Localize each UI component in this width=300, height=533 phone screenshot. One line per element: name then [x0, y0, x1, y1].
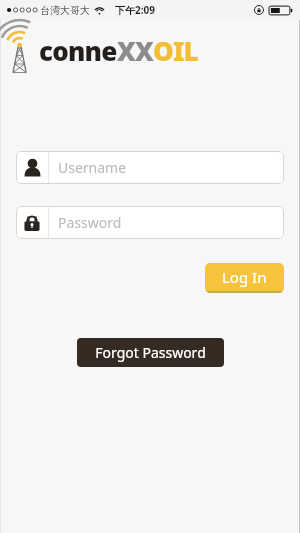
staticText: OIL	[153, 33, 198, 68]
staticText: Password	[58, 213, 122, 232]
button[interactable]: Username	[16, 151, 284, 184]
button[interactable]: Log In	[205, 263, 284, 293]
button[interactable]: Password	[16, 206, 284, 239]
staticText: XX	[117, 33, 153, 68]
staticText: conne	[39, 33, 117, 68]
staticText: Log In	[222, 267, 267, 287]
staticText: Forgot Password	[95, 343, 206, 362]
button[interactable]: Forgot Password	[77, 338, 224, 367]
staticText: 台湾大哥大	[40, 4, 90, 17]
staticText: Username	[58, 158, 127, 177]
staticText: 下午2:09	[115, 3, 155, 17]
